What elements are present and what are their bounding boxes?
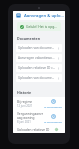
button[interactable]: Gelukt! Het is opgeslagen bbox=[17, 22, 61, 31]
staticText: Gelukt! Het is opgeslagen bbox=[26, 24, 58, 29]
staticText: In behandeling bbox=[44, 105, 62, 108]
button[interactable]: Uploaden van documenten 504 bbox=[16, 74, 62, 82]
button[interactable]: Bij regime bbox=[13, 97, 65, 110]
staticText: Aanvragen & uploaden bbox=[24, 13, 65, 19]
staticText: Historie bbox=[17, 90, 32, 95]
button[interactable]: Vergunningaanvraag woning bbox=[13, 110, 65, 126]
button[interactable]: Uploaden relatieve ID certificaat bbox=[13, 126, 65, 133]
staticText: Bij regime bbox=[17, 100, 33, 104]
other: Afgerond bbox=[54, 128, 59, 131]
button[interactable]: Aanvragen vakantiewoningvergunning wonin… bbox=[16, 54, 62, 62]
staticText: Uploaden relatieve ID certificaat bbox=[17, 128, 50, 131]
staticText: In behandeling bbox=[44, 120, 62, 123]
button[interactable]: Uploaden relatieve ID certificaat bbox=[16, 64, 62, 72]
staticText: 12 juni 2021 bbox=[17, 104, 33, 108]
staticText: Documenten bbox=[17, 36, 41, 41]
staticText: 8 juni 2021 bbox=[17, 120, 31, 124]
button[interactable]: Uploaden van documenten 4031 bbox=[16, 44, 62, 52]
button[interactable]: Menu bbox=[15, 12, 22, 19]
staticText: Vergunningaanvraag woning bbox=[17, 112, 43, 120]
staticText: Uploaden van documenten 4031 bbox=[18, 46, 56, 50]
staticText: Uploaden van documenten 504 bbox=[18, 76, 56, 80]
other: In behandeling bbox=[51, 99, 56, 104]
staticText: Uploaden relatieve ID certificaat bbox=[18, 66, 56, 70]
other: In behandeling bbox=[51, 114, 56, 119]
staticText: Aanvragen vakantiewoningvergunning wonin… bbox=[18, 56, 56, 60]
